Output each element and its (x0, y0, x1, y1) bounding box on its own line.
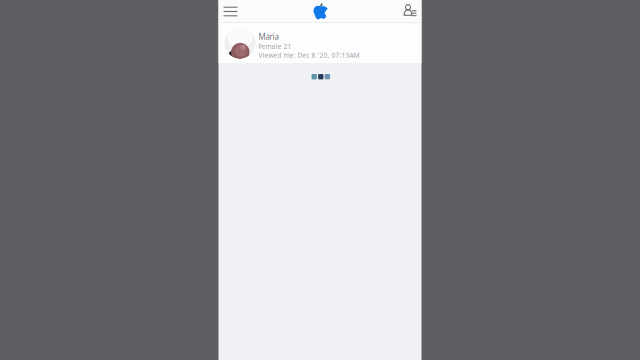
staticText: Maria (258, 31, 278, 42)
staticText: Viewed me: Dec 8 '20, 07:13AM (258, 51, 359, 60)
staticText: Female 21 (258, 42, 291, 51)
button[interactable]: Menu (218, 0, 263, 23)
button[interactable]: Maria (218, 23, 421, 63)
button[interactable]: Contacts (376, 0, 421, 23)
